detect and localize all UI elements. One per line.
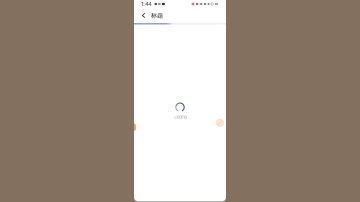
button[interactable]: Quick action — [216, 119, 224, 126]
staticText: 标题 — [151, 12, 163, 19]
staticText: 1:44 — [141, 1, 151, 7]
staticText: Loading — [173, 115, 186, 119]
button[interactable]: Back — [140, 10, 148, 20]
button[interactable]: Open side panel — [130, 123, 136, 131]
